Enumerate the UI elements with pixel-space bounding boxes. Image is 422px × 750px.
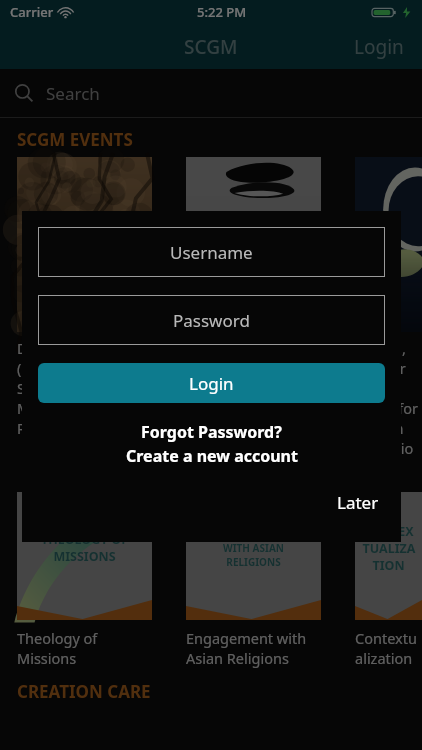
button[interactable]: CONTEXTUALIZATION (355, 492, 422, 668)
button[interactable]: Dr. Brian Fikkert (Chalmers Center) Semi… (17, 157, 152, 438)
staticText: CREATION CARE (17, 680, 151, 703)
staticText: Prophetic Breakfast (186, 338, 252, 378)
button[interactable]: Create a new account (22, 445, 401, 467)
button[interactable]: Search (0, 69, 422, 117)
staticText: Engagement with Asian Religions (186, 628, 307, 668)
staticText: Create a new account (126, 445, 298, 467)
staticText: Theology of Missions (17, 628, 98, 668)
staticText: Login (189, 372, 234, 395)
staticText: Contextualization (355, 628, 422, 668)
staticText: Search (46, 82, 100, 105)
staticText: Login (354, 34, 404, 60)
staticText: ENGAGEMENT WITH ASIAN RELIGIONS (192, 527, 315, 569)
staticText: SCGM EVENTS (17, 128, 133, 151)
staticText: Dr. Brian Fikkert (Chalmers Center) Semi… (17, 338, 152, 438)
button[interactable]: ENGAGEMENT WITH ASIAN RELIGIONS (186, 492, 321, 668)
staticText: Later (337, 491, 379, 514)
button[interactable]: Prophetic Breakfast (186, 157, 321, 378)
button[interactable]: Login (38, 363, 385, 403)
staticText: 5:22 PM (197, 3, 247, 21)
button[interactable]: Gospel, Gender and the Reformation Colle… (355, 157, 422, 478)
other: Search (14, 83, 34, 103)
button[interactable]: Later (315, 487, 401, 518)
button[interactable]: Username (38, 227, 385, 277)
staticText: CONTEXTUALIZATION (361, 523, 416, 574)
staticText: Forgot Password? (141, 421, 282, 443)
staticText: SCGM (184, 34, 238, 60)
button[interactable]: Login (336, 26, 422, 68)
staticText: Carrier (10, 3, 54, 21)
staticText: Gospel, Gender and the Reformation Colle… (355, 338, 422, 478)
staticText: Username (170, 241, 253, 264)
button[interactable]: Password (38, 295, 385, 345)
button[interactable]: THEOLOGY OF MISSIONS (17, 492, 152, 668)
button[interactable]: Forgot Password? (22, 421, 401, 443)
staticText: THEOLOGY OF MISSIONS (23, 531, 146, 565)
staticText: Password (173, 309, 250, 332)
